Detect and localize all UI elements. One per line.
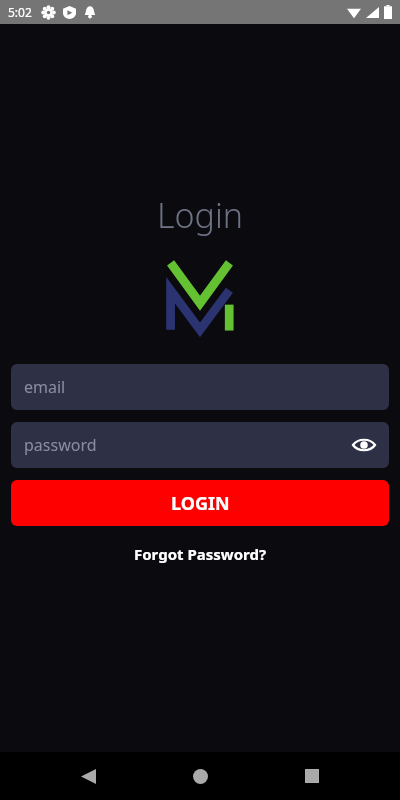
button[interactable]: Forgot Password?	[126, 540, 275, 568]
staticText: password	[24, 434, 97, 456]
staticText: Login	[0, 192, 400, 238]
button[interactable]: Recent apps	[288, 752, 336, 800]
button[interactable]: password	[11, 422, 389, 468]
staticText: email	[24, 376, 66, 398]
staticText: LOGIN	[171, 491, 230, 516]
button[interactable]: LOGIN	[11, 480, 389, 526]
button[interactable]: Home	[176, 752, 224, 800]
button[interactable]: email	[11, 364, 389, 410]
button[interactable]: Show password	[351, 432, 377, 458]
staticText: 5:02	[8, 4, 32, 20]
button[interactable]: Back	[64, 752, 112, 800]
